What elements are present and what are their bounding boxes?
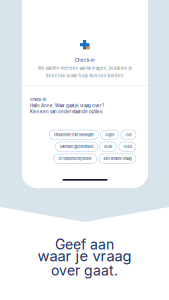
staticText: Buik bbox=[104, 144, 112, 149]
staticText: Check-in bbox=[75, 57, 95, 63]
staticText: Check-in bbox=[30, 97, 46, 102]
staticText: Ogen bbox=[105, 132, 114, 137]
button[interactable]: Mentale gezondheid bbox=[55, 142, 98, 151]
button[interactable]: Ogen bbox=[101, 130, 119, 139]
staticText: Problemen met bewegen bbox=[54, 132, 94, 137]
button[interactable]: Buik bbox=[100, 142, 117, 151]
staticText: Griepverschijnselen bbox=[58, 156, 92, 161]
staticText: Huid bbox=[123, 144, 131, 149]
staticText: direct de juiste hulp kunnen bieden. bbox=[45, 73, 124, 78]
staticText: over gaat. bbox=[51, 262, 118, 279]
staticText: Hallo Anne. Waar gaat je vraag over? bbox=[30, 103, 104, 108]
button[interactable]: Een andere vraag bbox=[99, 154, 136, 163]
staticText: Geef aan bbox=[55, 236, 114, 253]
button[interactable]: Griepverschijnselen bbox=[54, 154, 97, 163]
button[interactable]: Huid bbox=[119, 142, 136, 151]
staticText: We starten met een aantal vragen, zodat … bbox=[37, 65, 132, 71]
staticText: Een andere vraag bbox=[103, 156, 131, 161]
staticText: Mentale gezondheid bbox=[60, 144, 93, 149]
staticText: Kies een van onderstaande opties. bbox=[30, 109, 103, 114]
button[interactable]: Problemen met bewegen bbox=[49, 130, 99, 139]
button[interactable]: Oor bbox=[121, 130, 136, 139]
staticText: Oor bbox=[125, 132, 131, 137]
staticText: waar je vraag bbox=[37, 247, 131, 265]
